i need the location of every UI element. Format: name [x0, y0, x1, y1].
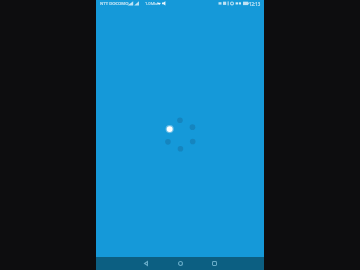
button[interactable]: Back: [139, 257, 153, 270]
staticText: 12:13: [249, 1, 261, 7]
staticText: NTT DOCOMO: [100, 1, 129, 7]
button[interactable]: Home: [173, 257, 187, 270]
staticText: 1.0Mb/s: [145, 1, 161, 6]
button[interactable]: Recent apps: [207, 257, 221, 270]
